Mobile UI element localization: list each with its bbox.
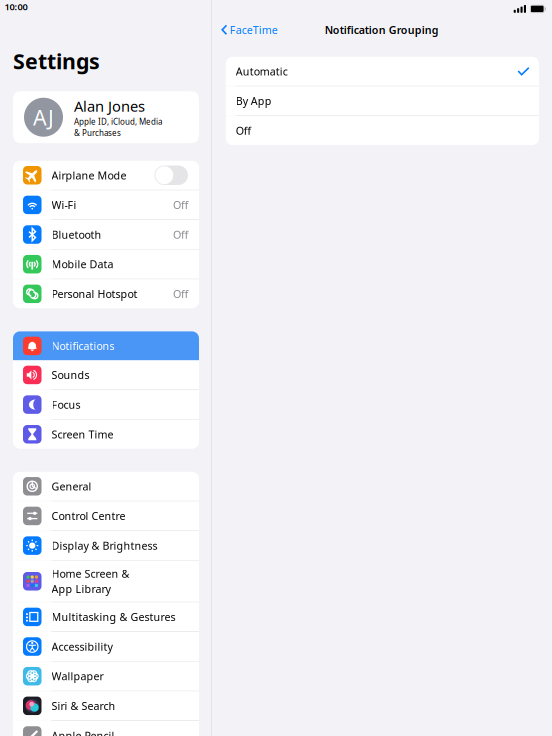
staticText: Home Screen & bbox=[51, 567, 129, 581]
staticText: Focus bbox=[51, 397, 80, 412]
staticText: Automatic bbox=[236, 64, 288, 78]
staticText: Sounds bbox=[51, 368, 89, 382]
staticText: Apple ID, iCloud, Media bbox=[74, 116, 162, 127]
staticText: Alan Jones bbox=[74, 96, 145, 116]
staticText: & Purchases bbox=[74, 127, 121, 138]
staticText: Off bbox=[236, 123, 251, 138]
button[interactable]: Bluetooth bbox=[13, 220, 199, 249]
button[interactable]: Focus bbox=[13, 390, 199, 419]
staticText: By App bbox=[236, 94, 272, 108]
button[interactable]: Control Centre bbox=[13, 501, 199, 530]
staticText: AJ bbox=[33, 103, 54, 131]
button[interactable]: Apple Pencil bbox=[13, 721, 199, 736]
staticText: Personal Hotspot bbox=[51, 287, 137, 301]
staticText: Settings bbox=[13, 47, 100, 75]
button[interactable]: AJ bbox=[13, 91, 199, 143]
button[interactable]: Sounds bbox=[13, 360, 199, 389]
button[interactable]: Multitasking & Gestures bbox=[13, 602, 199, 631]
staticText: Wi-Fi bbox=[51, 198, 76, 212]
button[interactable]: Display & Brightness bbox=[13, 531, 199, 560]
button[interactable]: Off bbox=[226, 116, 539, 145]
staticText: Airplane Mode bbox=[51, 168, 126, 182]
staticText: Display & Brightness bbox=[51, 538, 157, 553]
button[interactable]: Siri & Search bbox=[13, 691, 199, 720]
staticText: Mobile Data bbox=[51, 257, 113, 271]
staticText: Bluetooth bbox=[51, 227, 101, 242]
staticText: FaceTime bbox=[230, 23, 278, 37]
staticText: Off bbox=[173, 198, 188, 212]
button[interactable]: Personal Hotspot bbox=[13, 279, 199, 308]
staticText: General bbox=[51, 479, 91, 493]
button[interactable]: Screen Time bbox=[13, 420, 199, 449]
button[interactable]: Notifications bbox=[13, 331, 199, 360]
button[interactable]: Accessibility bbox=[13, 632, 199, 661]
staticText: Siri & Search bbox=[51, 699, 115, 713]
staticText: Off bbox=[173, 287, 188, 301]
staticText: 10:00 bbox=[4, 0, 27, 13]
staticText: Accessibility bbox=[51, 639, 112, 654]
staticText: Multitasking & Gestures bbox=[51, 610, 175, 624]
button[interactable]: Mobile Data bbox=[13, 250, 199, 279]
staticText: Off bbox=[173, 227, 188, 242]
button[interactable]: Wi-Fi bbox=[13, 190, 199, 219]
staticText: Notifications bbox=[51, 339, 114, 353]
staticText: App Library bbox=[51, 582, 110, 596]
staticText: Wallpaper bbox=[51, 669, 103, 683]
button[interactable]: General bbox=[13, 472, 199, 501]
button[interactable]: FaceTime bbox=[222, 19, 278, 41]
button[interactable]: Automatic bbox=[226, 57, 539, 86]
button[interactable]: Wallpaper bbox=[13, 662, 199, 691]
staticText: Apple Pencil bbox=[51, 728, 114, 736]
button[interactable]: Home Screen & bbox=[13, 561, 199, 602]
button[interactable]: By App bbox=[226, 86, 539, 116]
staticText: Notification Grouping bbox=[325, 23, 439, 37]
staticText: Control Centre bbox=[51, 509, 125, 523]
button[interactable]: Airplane Mode bbox=[13, 161, 199, 190]
staticText: Screen Time bbox=[51, 427, 113, 441]
